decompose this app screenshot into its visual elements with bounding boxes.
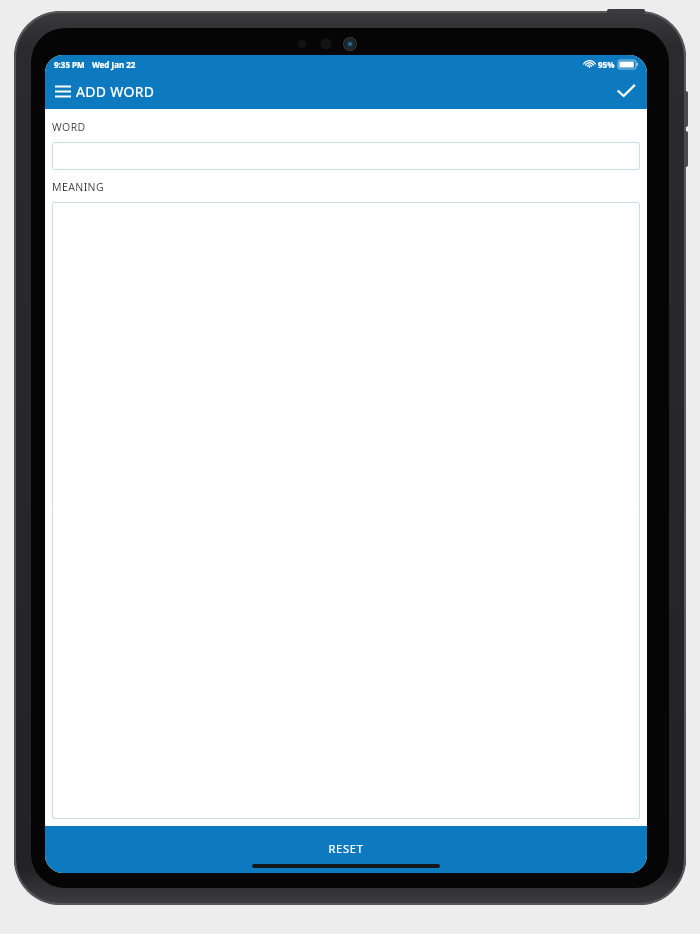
button[interactable] (52, 142, 640, 170)
staticText: Wed Jan 22 (92, 59, 136, 70)
staticText: RESET (328, 841, 364, 856)
button[interactable]: RESET (45, 826, 647, 873)
staticText: 9:35 PM (54, 59, 85, 70)
button[interactable] (52, 202, 640, 819)
staticText: WORD (52, 120, 86, 134)
staticText: ADD WORD (76, 82, 155, 101)
staticText: MEANING (52, 180, 105, 194)
button[interactable]: Open navigation menu (53, 79, 73, 104)
button[interactable]: Save word (605, 73, 647, 109)
staticText: 95% (598, 59, 615, 70)
